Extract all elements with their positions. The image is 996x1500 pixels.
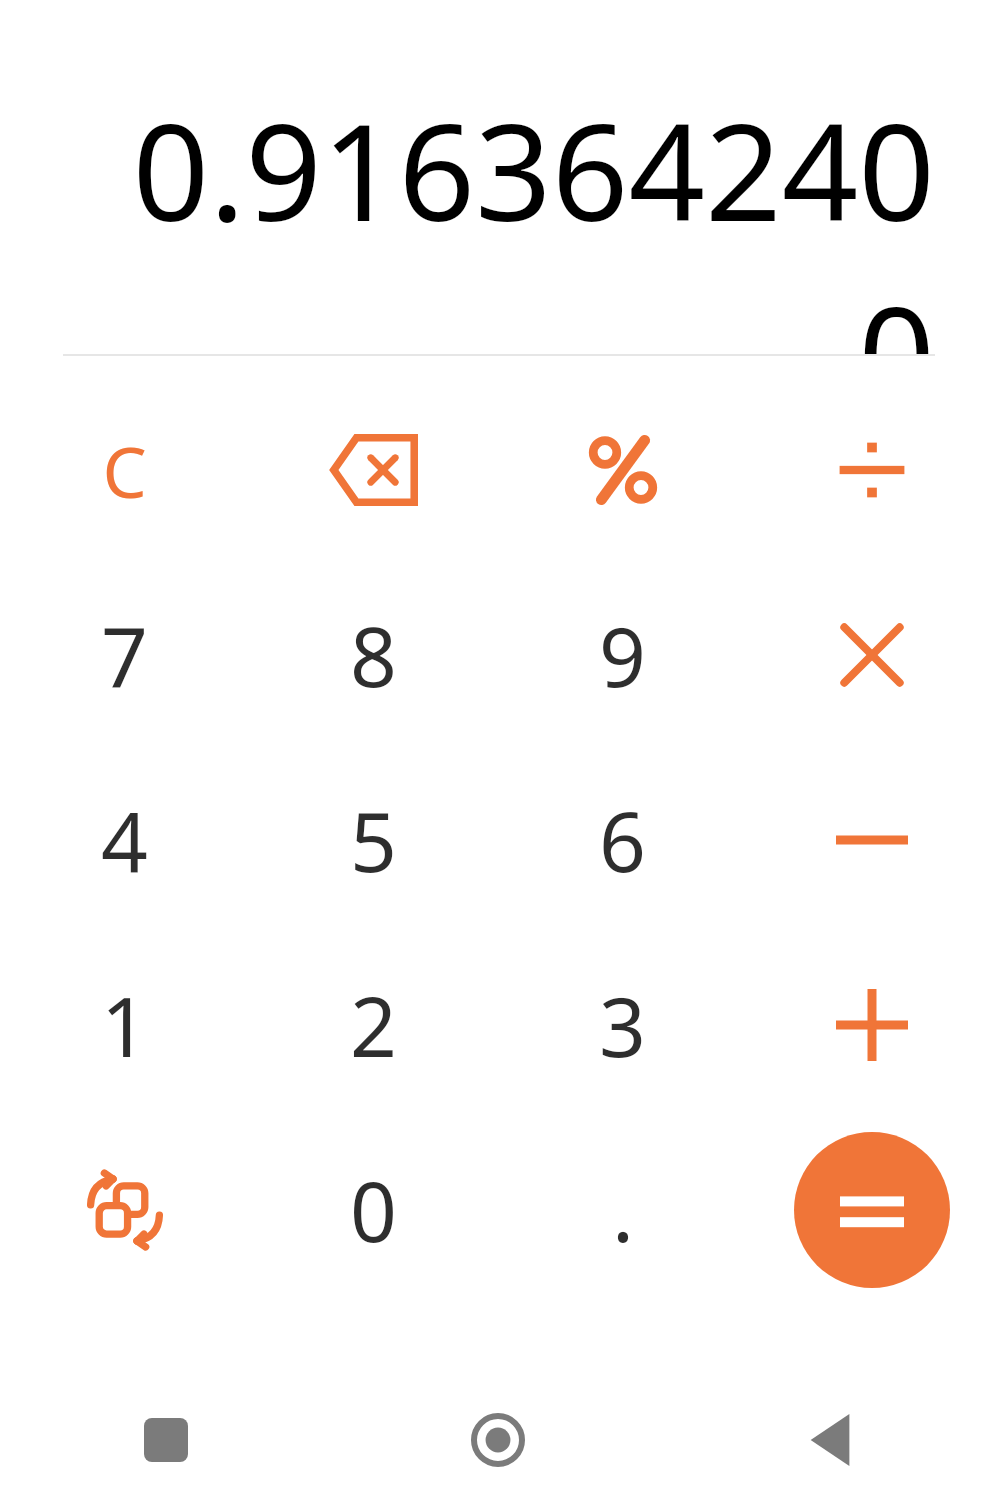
button[interactable]: 7 xyxy=(0,562,249,747)
button[interactable]: 5 xyxy=(249,747,498,932)
staticText: 6 xyxy=(599,784,646,896)
staticText: 1 xyxy=(101,969,148,1081)
staticText: . xyxy=(612,1154,634,1266)
staticText: 2 xyxy=(350,969,397,1081)
staticText: 9 xyxy=(599,599,646,711)
staticText: 3 xyxy=(599,969,646,1081)
staticText: 5 xyxy=(350,784,397,896)
button[interactable]: 1 xyxy=(0,932,249,1117)
staticText: 0.9163642400 xyxy=(63,78,935,356)
button[interactable]: Minus xyxy=(747,747,996,932)
button[interactable]: 2 xyxy=(249,932,498,1117)
button[interactable]: Recents xyxy=(0,1380,332,1500)
button[interactable]: 0 xyxy=(249,1117,498,1302)
button[interactable]: Multiply xyxy=(747,562,996,747)
button[interactable]: Percent xyxy=(498,378,747,562)
button[interactable]: Backspace xyxy=(249,378,498,562)
staticText: 7 xyxy=(101,599,148,711)
button[interactable]: Divide xyxy=(747,378,996,562)
button[interactable]: 9 xyxy=(498,562,747,747)
button[interactable]: Clear xyxy=(0,378,249,562)
button[interactable]: Equals xyxy=(747,1117,996,1302)
button[interactable]: 6 xyxy=(498,747,747,932)
staticText: 0 xyxy=(350,1154,397,1266)
button[interactable]: Back xyxy=(664,1380,996,1500)
button[interactable]: Unit converter xyxy=(0,1117,249,1302)
button[interactable]: 3 xyxy=(498,932,747,1117)
button[interactable]: 4 xyxy=(0,747,249,932)
button[interactable]: Home xyxy=(332,1380,664,1500)
staticText: 4 xyxy=(101,784,148,896)
staticText: 8 xyxy=(350,599,397,711)
staticText: C xyxy=(102,423,147,518)
button[interactable]: . xyxy=(498,1117,747,1302)
button[interactable]: Plus xyxy=(747,932,996,1117)
button[interactable]: 8 xyxy=(249,562,498,747)
